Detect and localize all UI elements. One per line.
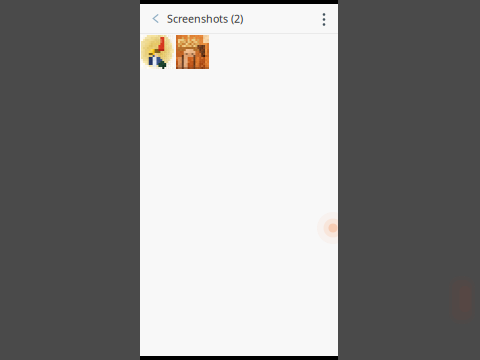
button[interactable]: Back [140, 4, 167, 33]
button[interactable]: Screenshot 1 [141, 35, 174, 69]
button[interactable]: Screenshot 2 [176, 35, 209, 69]
button[interactable]: More options [310, 4, 338, 33]
staticText: Screenshots (2) [167, 11, 243, 26]
